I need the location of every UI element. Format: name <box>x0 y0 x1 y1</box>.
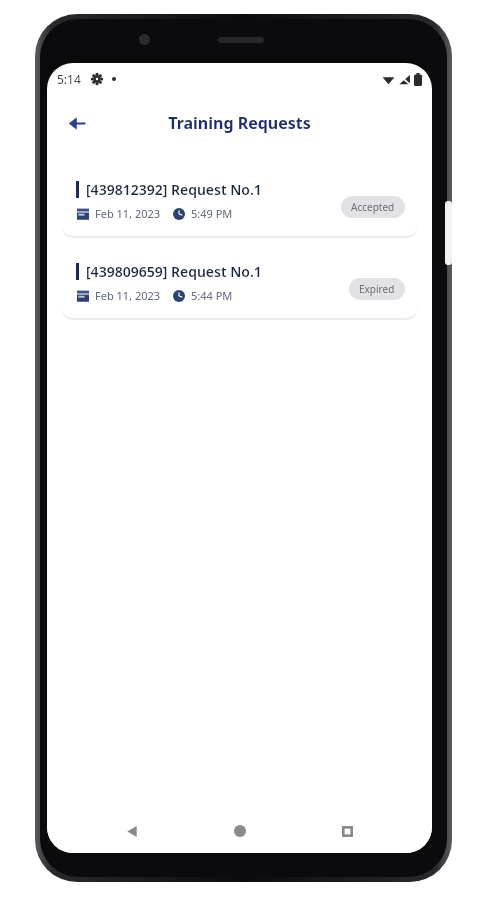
button[interactable]: Back <box>57 103 97 143</box>
staticText: [439809659] Request No.1 <box>86 262 262 281</box>
staticText: 5:14 <box>57 71 81 87</box>
button[interactable]: [439809659] Request No.1 <box>62 247 417 318</box>
button[interactable]: Recent apps <box>325 809 369 853</box>
button[interactable]: Accepted <box>341 196 405 218</box>
button[interactable]: Expired <box>349 278 405 300</box>
button[interactable]: Back <box>110 809 154 853</box>
staticText: Accepted <box>351 200 395 214</box>
staticText: Feb 11, 2023 <box>95 206 161 221</box>
staticText: 5:44 PM <box>191 288 233 303</box>
staticText: Feb 11, 2023 <box>95 288 161 303</box>
staticText: [439812392] Request No.1 <box>86 180 262 199</box>
staticText: 5:49 PM <box>191 206 233 221</box>
staticText: Expired <box>359 282 395 296</box>
staticText: Training Requests <box>168 112 311 134</box>
button[interactable]: [439812392] Request No.1 <box>62 165 417 236</box>
button[interactable]: Home <box>218 809 262 853</box>
